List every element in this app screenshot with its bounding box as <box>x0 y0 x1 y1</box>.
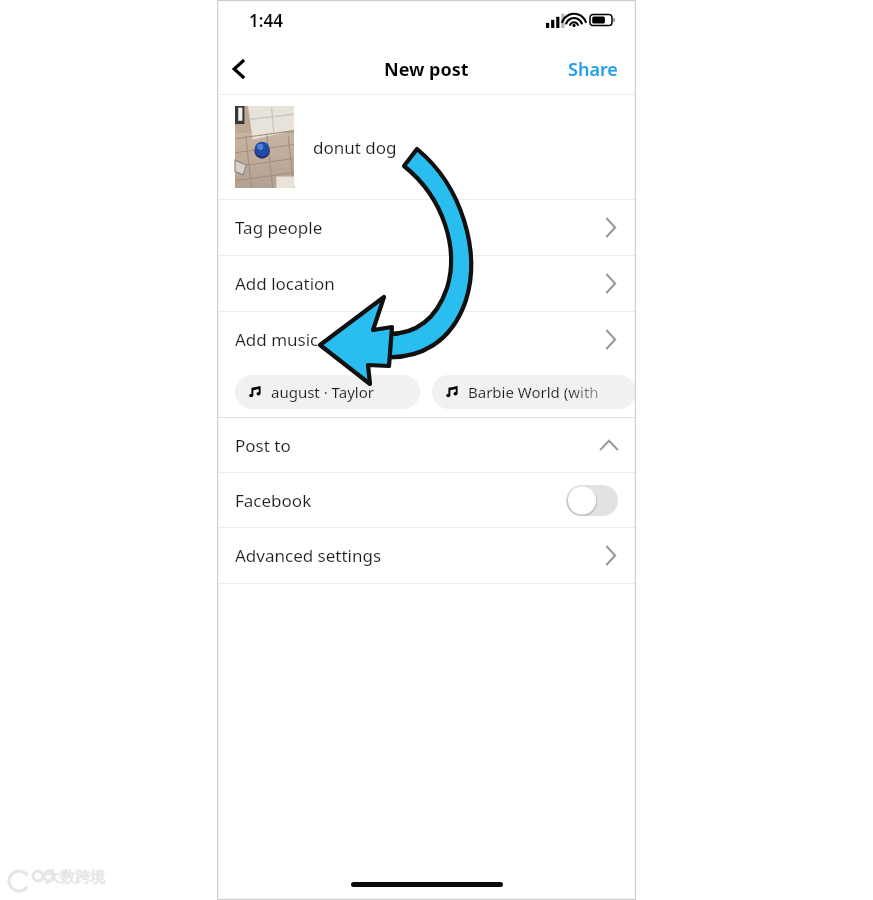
staticText: Advanced settings <box>235 544 382 567</box>
staticText: Tag people <box>235 216 323 239</box>
button[interactable]: Back <box>217 47 261 91</box>
button[interactable]: Facebook <box>217 473 636 527</box>
staticText: 1:44 <box>249 9 283 32</box>
staticText: Share <box>568 57 618 82</box>
button[interactable]: Barbie World (with Aqua <box>432 375 636 409</box>
button[interactable]: Tag people <box>217 200 636 255</box>
button[interactable]: Add music <box>217 312 636 367</box>
staticText: Post to <box>235 434 291 457</box>
staticText: Barbie World (with Aqua <box>468 382 626 402</box>
button[interactable]: Add location <box>217 256 636 311</box>
staticText: Add music <box>235 328 319 351</box>
button[interactable]: Post to <box>217 418 636 472</box>
staticText: 大数跨境 <box>45 868 105 887</box>
staticText: Add location <box>235 272 335 295</box>
button[interactable]: Share <box>558 49 628 90</box>
staticText: august · Taylor Swift <box>271 382 410 402</box>
button[interactable]: Facebook toggle <box>566 485 618 516</box>
button[interactable]: donut dog <box>217 95 636 199</box>
staticText: donut dog <box>313 136 397 159</box>
button[interactable]: august · Taylor Swift <box>235 375 420 409</box>
button[interactable]: Advanced settings <box>217 528 636 583</box>
staticText: New post <box>384 57 469 82</box>
staticText: Facebook <box>235 489 312 512</box>
